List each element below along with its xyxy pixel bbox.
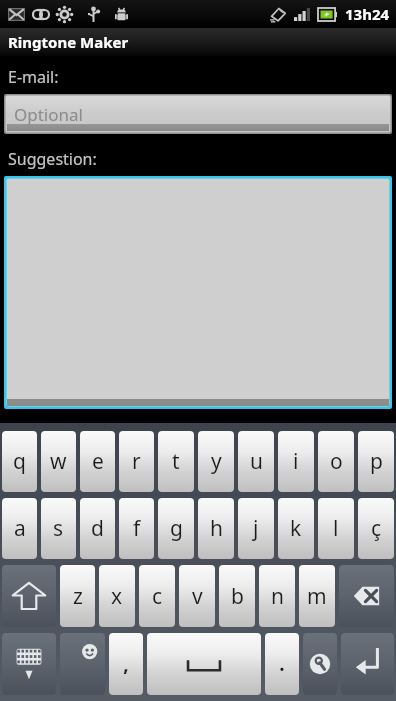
button[interactable]: Settings [303,633,337,695]
button[interactable]: Shift [2,565,56,627]
button[interactable]: Optional [4,94,392,134]
staticText: q [13,447,26,476]
staticText: 13h24 [345,4,390,24]
button[interactable]: ç [358,498,394,559]
button[interactable]: q [2,431,37,492]
button[interactable]: r [119,431,154,492]
staticText: c [152,582,163,611]
staticText: h [210,514,223,543]
staticText: ç [371,514,382,543]
button[interactable]: o [318,431,354,492]
staticText: Ringtone Maker [8,32,129,52]
button[interactable]: Symbols [60,633,105,695]
staticText: i [293,447,299,476]
staticText: p [370,447,383,476]
staticText: Optional [14,103,83,126]
staticText: y [211,447,222,476]
staticText: l [333,514,339,543]
staticText: f [133,514,141,543]
button[interactable]: i [278,431,314,492]
button[interactable]: p [358,431,394,492]
button[interactable]: k [278,498,314,559]
button[interactable]: v [179,565,215,627]
staticText: s [53,514,64,543]
button[interactable]: Hide keyboard [2,633,56,695]
button[interactable] [147,633,261,695]
staticText: . [279,651,285,677]
staticText: n [271,582,284,611]
button[interactable]: d [80,498,115,559]
button[interactable] [4,176,392,409]
button[interactable]: e [80,431,115,492]
button[interactable]: g [158,498,194,559]
staticText: r [132,447,141,476]
staticText: m [307,582,327,611]
staticText: e [92,447,104,476]
button[interactable]: f [119,498,154,559]
button[interactable]: x [99,565,135,627]
staticText: d [91,514,104,543]
button[interactable]: c [139,565,175,627]
staticText: E-mail: [8,66,59,88]
button[interactable]: t [158,431,194,492]
button[interactable]: . [265,633,299,695]
staticText: o [330,447,343,476]
button[interactable]: a [2,498,37,559]
button[interactable]: s [41,498,76,559]
staticText: z [73,582,83,611]
button[interactable]: j [238,498,274,559]
button[interactable]: , [109,633,143,695]
staticText: t [172,447,180,476]
button[interactable]: h [198,498,234,559]
staticText: k [290,514,302,543]
staticText: g [170,514,183,543]
staticText: u [250,447,263,476]
button[interactable]: z [60,565,95,627]
staticText: b [231,582,244,611]
button[interactable]: w [41,431,76,492]
button[interactable]: b [219,565,255,627]
button[interactable]: n [259,565,295,627]
button[interactable]: m [299,565,335,627]
staticText: a [14,514,26,543]
staticText: w [50,447,67,476]
staticText: Suggestion: [8,148,97,170]
button[interactable]: Enter [341,633,394,695]
button[interactable]: Delete [339,565,394,627]
staticText: , [123,651,129,677]
staticText: x [111,582,123,611]
staticText: v [192,582,203,611]
button[interactable]: y [198,431,234,492]
button[interactable]: u [238,431,274,492]
staticText: j [253,514,259,543]
button[interactable]: l [318,498,354,559]
